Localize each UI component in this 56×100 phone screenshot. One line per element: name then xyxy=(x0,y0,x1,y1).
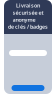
staticText: Livraison xyxy=(16,2,40,9)
staticText: sécurisée et anonyme xyxy=(12,9,43,23)
staticText: de clés / badges xyxy=(8,23,48,30)
